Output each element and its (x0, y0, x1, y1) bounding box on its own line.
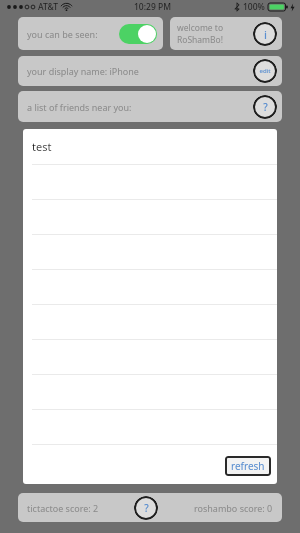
staticText: edit (259, 67, 271, 75)
staticText: refresh (231, 459, 265, 473)
staticText: test (32, 139, 52, 154)
staticText: welcome to (177, 22, 224, 34)
button[interactable] (23, 445, 277, 479)
button[interactable]: Visibility toggle, on (119, 24, 157, 44)
button[interactable]: your display name: iPhone (18, 56, 282, 86)
staticText: roshambo score: 0 (194, 502, 273, 514)
staticText: you can be seen: (27, 28, 98, 40)
button[interactable]: Help about scores (134, 496, 158, 520)
staticText: RoShamBo! (177, 34, 224, 46)
button[interactable]: welcome to (170, 17, 282, 50)
staticText: a list of friends near you: (27, 101, 132, 113)
button[interactable]: Edit display name (253, 59, 277, 83)
staticText: your display name: iPhone (27, 65, 139, 77)
staticText: tictactoe score: 2 (27, 502, 99, 514)
button[interactable]: test (23, 129, 277, 164)
staticText: ? (144, 501, 149, 515)
staticText: i (264, 27, 267, 42)
button[interactable]: Information about RoShamBo (253, 22, 277, 46)
button[interactable]: Help about friends list (253, 95, 277, 119)
staticText: 100% (243, 1, 265, 13)
staticText: 10:29 PM (134, 1, 171, 13)
button[interactable]: refresh (225, 456, 271, 476)
button[interactable]: tictactoe score: 2 (18, 493, 282, 522)
staticText: ? (263, 100, 268, 114)
button[interactable]: a list of friends near you: (18, 91, 282, 122)
button[interactable]: you can be seen: (18, 17, 163, 50)
staticText: AT&T (38, 1, 59, 13)
